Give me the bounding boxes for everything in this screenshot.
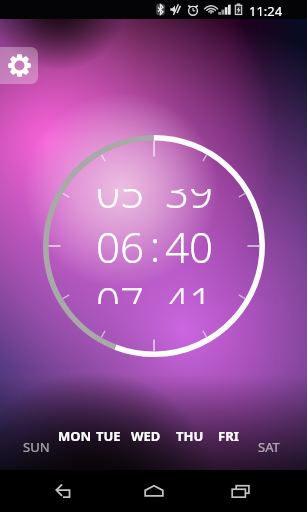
staticText: 39 [165,189,213,220]
button[interactable]: 05 [96,189,144,220]
staticText: 41 [165,273,213,304]
button[interactable]: 39 [165,189,213,220]
staticText: 06 [96,218,144,275]
button[interactable]: Back [44,470,88,512]
button[interactable]: SUN [23,438,50,456]
staticText: THU [176,427,204,445]
staticText: 07 [96,273,144,304]
staticText: FRI [218,427,239,445]
staticText: SUN [23,438,50,456]
staticText: : [150,217,161,274]
button[interactable]: MON [58,427,92,445]
staticText: TUE [96,427,121,445]
button[interactable]: WED [131,427,161,445]
button[interactable]: FRI [218,427,239,445]
staticText: 05 [96,189,144,220]
button[interactable]: 40 [165,218,213,275]
button[interactable]: Recents [219,470,263,512]
button[interactable]: Home [132,470,176,512]
button[interactable]: TUE [96,427,121,445]
staticText: 40 [165,218,213,275]
button[interactable]: Settings [0,47,38,84]
staticText: MON [58,427,92,445]
staticText: SAT [258,438,280,456]
button[interactable]: SAT [258,438,280,456]
staticText: WED [131,427,161,445]
button[interactable]: 06 [96,218,144,275]
button[interactable]: 07 [96,273,144,304]
button[interactable]: THU [176,427,204,445]
button[interactable]: 41 [165,273,213,304]
staticText: 11:24 [249,2,283,20]
